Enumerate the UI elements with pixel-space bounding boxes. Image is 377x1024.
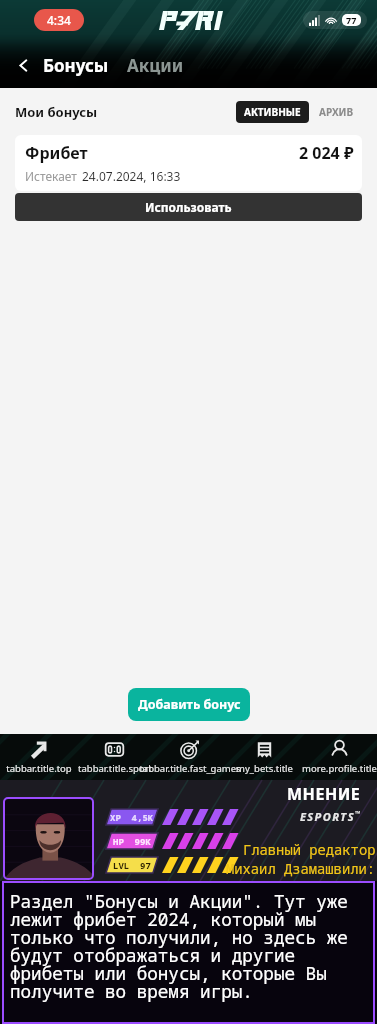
staticText: Мои бонусы — [15, 103, 98, 121]
staticText: tabbar.title.sport — [78, 762, 152, 775]
staticText: 4:34 — [47, 12, 71, 28]
other: PARI — [159, 11, 227, 30]
staticText: Раздел "Бонусы и Акции". Тут уже лежит ф… — [10, 889, 369, 1003]
staticText: Использовать — [145, 199, 232, 215]
staticText: Главный редактор — [243, 840, 376, 859]
button[interactable]: Top — [0, 734, 76, 780]
button[interactable]: Profile — [302, 734, 377, 780]
staticText: Добавить бонус — [138, 696, 241, 713]
staticText: tabbar.title.fast_games — [139, 762, 241, 775]
staticText: МНЕНИЕ — [287, 783, 361, 805]
staticText: ™ — [355, 809, 361, 819]
staticText: Бонусы — [43, 54, 109, 77]
staticText: more.profile.title — [302, 762, 377, 775]
button[interactable]: Добавить бонус — [128, 688, 250, 721]
staticText: АКТИВНЫЕ — [244, 105, 301, 119]
staticText: Истекает — [25, 168, 77, 184]
staticText: tabbar.title.top — [6, 762, 72, 775]
button[interactable]: Акции — [122, 50, 189, 81]
button[interactable]: My bets — [227, 734, 302, 780]
button[interactable]: Использовать — [15, 193, 362, 221]
staticText: XP 4,5K — [110, 811, 154, 823]
staticText: HP 99K — [113, 835, 151, 847]
staticText: 77 — [346, 14, 357, 26]
staticText: 24.07.2024, 16:33 — [82, 168, 181, 184]
staticText: LVL 97 — [113, 859, 151, 871]
staticText: Фрибет — [25, 142, 88, 164]
button[interactable]: АКТИВНЫЕ — [236, 101, 309, 123]
staticText: Михаил Дзамашвили: — [226, 859, 376, 878]
staticText: АРХИВ — [319, 105, 354, 119]
staticText: my_bets.title — [236, 762, 293, 775]
button[interactable]: Fast games — [152, 734, 227, 780]
staticText: 2 024 ₽ — [299, 142, 354, 164]
staticText: Акции — [127, 54, 184, 77]
button[interactable]: Back — [8, 50, 38, 80]
button[interactable]: АРХИВ — [311, 101, 362, 123]
button[interactable]: Бонусы — [38, 50, 114, 81]
staticText: ESPORTS — [300, 809, 355, 824]
button[interactable]: Sport — [76, 734, 152, 780]
